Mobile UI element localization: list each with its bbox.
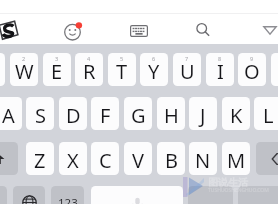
staticText: N bbox=[195, 147, 211, 174]
button[interactable]: 1 bbox=[0, 53, 5, 86]
button[interactable]: 2 bbox=[10, 53, 38, 86]
button[interactable]: 7 bbox=[173, 53, 201, 86]
staticText: Z bbox=[34, 147, 46, 174]
staticText: K bbox=[230, 102, 243, 129]
button[interactable]: 123 bbox=[51, 186, 84, 204]
button[interactable]: 4 bbox=[75, 53, 103, 86]
button[interactable]: H bbox=[157, 97, 185, 130]
staticText: B bbox=[165, 147, 178, 174]
button[interactable]: C bbox=[91, 142, 119, 175]
staticText: W bbox=[15, 58, 34, 85]
staticText: X bbox=[67, 147, 79, 174]
button[interactable]: Backspace bbox=[256, 142, 278, 175]
button[interactable]: Emoji bbox=[238, 186, 278, 204]
staticText: 8 bbox=[218, 55, 222, 62]
button[interactable]: Z bbox=[26, 142, 54, 175]
staticText: 5 bbox=[120, 55, 124, 62]
button[interactable]: D bbox=[59, 97, 87, 130]
staticText: 2 bbox=[22, 55, 26, 62]
staticText: Y bbox=[148, 58, 160, 85]
staticText: C bbox=[99, 147, 112, 174]
button[interactable]: 6 bbox=[140, 53, 168, 86]
staticText: J bbox=[200, 102, 206, 129]
button[interactable]: Switch language bbox=[13, 186, 45, 204]
button[interactable]: V bbox=[124, 142, 152, 175]
button[interactable]: K bbox=[222, 97, 250, 130]
staticText: 6 bbox=[152, 55, 156, 62]
button[interactable]: B bbox=[157, 142, 185, 175]
button[interactable]: Shift bbox=[0, 142, 18, 175]
staticText: R bbox=[83, 58, 96, 85]
button[interactable]: Return bbox=[188, 186, 233, 204]
button[interactable]: G bbox=[124, 97, 152, 130]
button[interactable]: Emoji bbox=[62, 20, 84, 42]
button[interactable]: N bbox=[189, 142, 217, 175]
staticText: 7 bbox=[185, 55, 189, 62]
staticText: L bbox=[263, 102, 274, 129]
button[interactable]: Space bbox=[91, 186, 183, 204]
button[interactable]: M bbox=[222, 142, 250, 175]
button[interactable]: 0 bbox=[271, 53, 278, 86]
button[interactable]: Keyboard layout bbox=[127, 19, 150, 42]
staticText: F bbox=[100, 102, 111, 129]
staticText: TUSHUOSHENGHUO.COM bbox=[208, 187, 269, 194]
button[interactable]: Hide keyboard bbox=[258, 19, 278, 42]
staticText: M bbox=[227, 147, 246, 174]
button[interactable]: A bbox=[0, 97, 22, 130]
staticText: 3 bbox=[55, 55, 59, 62]
staticText: A bbox=[2, 102, 15, 129]
staticText: 4 bbox=[87, 55, 91, 62]
button[interactable]: F bbox=[91, 97, 119, 130]
button[interactable]: 8 bbox=[206, 53, 234, 86]
staticText: 9 bbox=[250, 55, 254, 62]
staticText: H bbox=[164, 102, 179, 129]
button[interactable]: 3 bbox=[43, 53, 71, 86]
button[interactable]: Search bbox=[191, 18, 214, 41]
button[interactable]: 9 bbox=[238, 53, 266, 86]
staticText: I bbox=[217, 58, 224, 85]
staticText: D bbox=[66, 102, 81, 129]
staticText: T bbox=[116, 58, 128, 85]
staticText: G bbox=[131, 102, 146, 129]
staticText: E bbox=[51, 58, 63, 85]
button[interactable]: 5 bbox=[108, 53, 136, 86]
button[interactable]: X bbox=[59, 142, 87, 175]
button[interactable]: S bbox=[26, 97, 54, 130]
staticText: V bbox=[132, 147, 144, 174]
staticText: O bbox=[244, 58, 260, 85]
button[interactable]: Sogou input bbox=[0, 18, 20, 42]
staticText: S bbox=[35, 102, 46, 129]
button[interactable]: J bbox=[189, 97, 217, 130]
staticText: 图说生活 bbox=[208, 176, 248, 189]
staticText: 123 bbox=[58, 195, 78, 204]
button[interactable]: L bbox=[254, 97, 278, 130]
staticText: U bbox=[180, 58, 195, 85]
